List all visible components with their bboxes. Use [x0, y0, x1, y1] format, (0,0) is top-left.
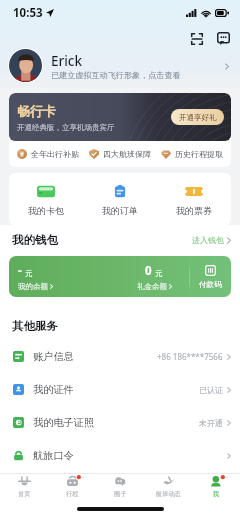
staticText: 畅行卡 [17, 103, 56, 119]
button[interactable]: 行程 [48, 476, 96, 497]
staticText: 全年出行补贴 [31, 149, 79, 159]
button[interactable] [9, 49, 42, 82]
staticText: 已认证 [199, 385, 223, 395]
button[interactable]: 我的证件 [0, 373, 240, 406]
staticText: 其他服务 [12, 319, 58, 333]
staticText: 我的卡包 [28, 205, 64, 216]
staticText: 未开通 [199, 418, 223, 428]
button[interactable]: 0 [119, 256, 189, 297]
button[interactable]: 圈子 [96, 476, 144, 497]
staticText: Erick [51, 52, 83, 70]
button[interactable]: 扫一扫 [188, 30, 205, 47]
staticText: - [18, 263, 22, 279]
staticText: 我的钱包 [12, 233, 58, 247]
staticText: 0 [145, 263, 152, 279]
staticText: 我的订单 [102, 205, 138, 216]
staticText: 元 [25, 269, 33, 278]
button[interactable]: 航旅口令 [0, 439, 240, 472]
staticText: 付款码 [199, 280, 222, 289]
button[interactable]: 畅行卡 [9, 93, 231, 141]
staticText: 开通享好礼 [179, 113, 217, 122]
button[interactable]: 我的订单 [83, 173, 157, 225]
staticText: 已建立虚拟互动飞行形象，点击查看 [51, 70, 181, 80]
staticText: 进入钱包 [192, 235, 224, 245]
staticText: 我的票券 [176, 205, 212, 216]
button[interactable]: 我的票券 [157, 173, 231, 225]
staticText: 账户信息 [33, 350, 74, 363]
button[interactable]: 账户信息 [0, 340, 240, 373]
staticText: 10:53 [13, 5, 43, 21]
button[interactable]: - [9, 256, 119, 297]
staticText: 我的证件 [33, 383, 74, 396]
staticText: 圈子 [114, 490, 127, 497]
staticText: 首页 [18, 490, 31, 497]
staticText: 礼金余额 [137, 282, 167, 291]
button[interactable]: 进入钱包 [192, 235, 231, 245]
staticText: 航旅口令 [33, 449, 74, 462]
staticText: +86 186****7566 [157, 351, 223, 362]
button[interactable]: 付款码 [190, 256, 231, 297]
staticText: 四大航班保障 [103, 149, 151, 159]
button[interactable]: 我的电子证照 [0, 406, 240, 439]
staticText: 航班动态 [156, 490, 181, 497]
staticText: 元 [155, 269, 163, 278]
button[interactable]: 我的卡包 [9, 173, 83, 225]
staticText: 历史行程提取 [175, 149, 223, 159]
staticText: 我 [213, 490, 220, 497]
button[interactable]: 首页 [0, 476, 48, 497]
button[interactable]: 航班动态 [144, 476, 192, 497]
button[interactable]: 开通享好礼 [171, 109, 224, 125]
staticText: 我的电子证照 [33, 416, 95, 429]
button[interactable]: 我 [192, 476, 240, 497]
staticText: 开通经典版，立享机场贵宾厅 [17, 123, 115, 132]
button[interactable]: 查看 [222, 61, 232, 71]
staticText: 行程 [66, 490, 79, 497]
staticText: 我的余额 [18, 282, 48, 291]
button[interactable]: 消息 [215, 30, 232, 47]
